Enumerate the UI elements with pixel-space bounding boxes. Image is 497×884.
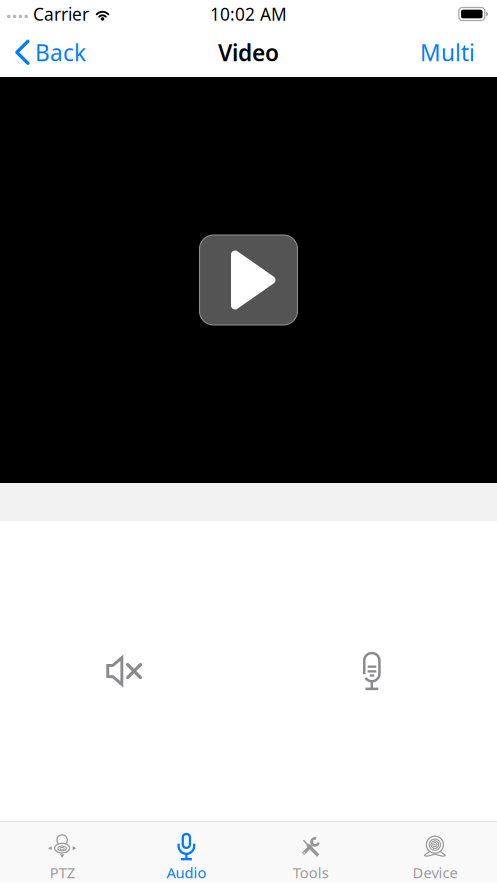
- button[interactable]: Multi: [412, 31, 497, 73]
- button[interactable]: Audio: [124, 822, 248, 883]
- button[interactable]: Back: [0, 31, 94, 73]
- staticText: Device: [412, 863, 457, 882]
- button[interactable]: Microphone: [248, 634, 497, 708]
- staticText: Video: [218, 37, 279, 67]
- button[interactable]: Play: [199, 235, 297, 325]
- button[interactable]: Tools: [248, 822, 373, 883]
- staticText: Multi: [420, 37, 475, 67]
- staticText: PTZ: [50, 863, 75, 882]
- button[interactable]: PTZ: [0, 822, 124, 883]
- staticText: Audio: [166, 863, 206, 882]
- button[interactable]: Device: [373, 822, 497, 883]
- staticText: Back: [35, 37, 86, 67]
- staticText: Carrier: [33, 2, 89, 25]
- button[interactable]: Mute speaker: [0, 634, 248, 708]
- staticText: 10:02 AM: [210, 2, 287, 25]
- staticText: Tools: [293, 863, 329, 882]
